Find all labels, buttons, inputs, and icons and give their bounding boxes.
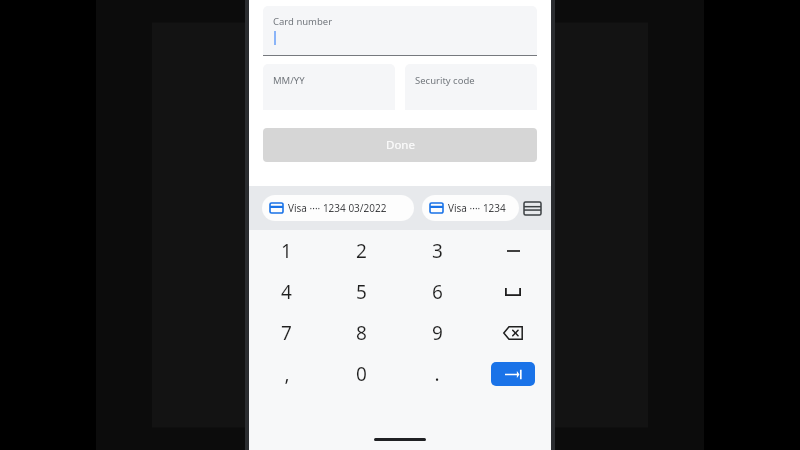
staticText: MM/YY <box>273 74 305 87</box>
staticText: 3 <box>432 238 443 264</box>
button[interactable]: . <box>399 353 475 394</box>
button[interactable]: 8 <box>324 312 399 353</box>
button[interactable]: 5 <box>324 271 399 312</box>
button[interactable]: , <box>249 353 324 394</box>
button[interactable]: 0 <box>324 353 399 394</box>
button[interactable]: Space <box>475 271 551 312</box>
staticText: 4 <box>281 279 292 305</box>
staticText: Visa ···· 1234 03/2022 <box>288 201 387 215</box>
staticText: 7 <box>281 320 292 346</box>
button[interactable]: Visa ···· 1234 0 <box>422 195 519 221</box>
button[interactable]: 6 <box>399 271 475 312</box>
staticText: 9 <box>432 320 443 346</box>
staticText: Card number <box>273 15 333 28</box>
button[interactable]: Visa ···· 1234 03/2022 <box>262 195 414 221</box>
button[interactable]: Backspace <box>475 312 551 353</box>
button[interactable]: Payment methods <box>519 195 545 221</box>
button[interactable]: 4 <box>249 271 324 312</box>
button[interactable]: 1 <box>249 230 324 271</box>
button[interactable]: 9 <box>399 312 475 353</box>
staticText: , <box>284 361 290 387</box>
staticText: Security code <box>415 74 475 87</box>
button[interactable]: Dash <box>475 230 551 271</box>
staticText: Visa ···· 1234 0 <box>448 201 513 215</box>
button[interactable]: Security code <box>405 64 537 110</box>
button[interactable]: 3 <box>399 230 475 271</box>
staticText: 5 <box>356 279 367 305</box>
staticText: 1 <box>281 238 292 264</box>
staticText: 2 <box>356 238 367 264</box>
staticText: Done <box>386 137 415 153</box>
staticText: 0 <box>356 361 367 387</box>
staticText: 8 <box>356 320 367 346</box>
button[interactable]: Done <box>263 128 537 162</box>
button[interactable]: MM/YY <box>263 64 395 110</box>
button[interactable]: Card number <box>263 6 537 56</box>
button[interactable]: Next <box>475 353 551 394</box>
button[interactable]: 2 <box>324 230 399 271</box>
button[interactable]: 7 <box>249 312 324 353</box>
staticText: 6 <box>432 279 443 305</box>
staticText: . <box>434 361 440 387</box>
